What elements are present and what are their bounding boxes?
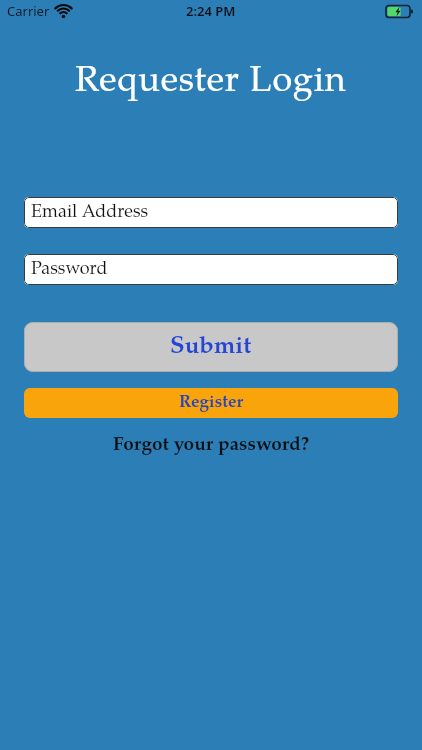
- button[interactable]: Password: [24, 254, 398, 285]
- staticText: Register: [179, 395, 244, 412]
- button[interactable]: Register: [24, 388, 398, 418]
- staticText: Password: [31, 261, 108, 279]
- staticText: Email Address: [31, 204, 149, 222]
- staticText: Submit: [170, 336, 252, 359]
- staticText: Requester Login: [75, 65, 347, 101]
- button[interactable]: Forgot your password?: [113, 436, 310, 455]
- button[interactable]: Submit: [24, 322, 398, 372]
- staticText: Carrier: [7, 2, 50, 20]
- staticText: 2:24 PM: [186, 2, 236, 20]
- button[interactable]: Email Address: [24, 197, 398, 228]
